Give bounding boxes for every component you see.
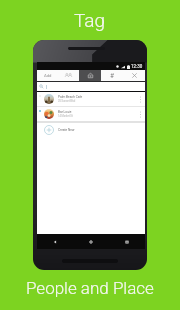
staticText: Palm Beach Cafe xyxy=(58,95,83,99)
other: More options xyxy=(139,96,142,103)
staticText: Bar Louie xyxy=(58,110,72,114)
button[interactable]: Add xyxy=(37,70,58,81)
button[interactable]: Home xyxy=(73,234,109,249)
button[interactable]: Tag xyxy=(101,70,123,81)
staticText: Tag xyxy=(74,9,106,31)
staticText: People and Place xyxy=(26,278,154,298)
button[interactable]: Bar Louie xyxy=(37,107,145,121)
button[interactable]: Recents xyxy=(109,234,145,249)
staticText: Create New xyxy=(58,128,75,132)
staticText: 12:30 xyxy=(131,64,143,69)
staticText: 14 Market St xyxy=(58,115,73,118)
staticText: Add xyxy=(44,73,52,78)
button[interactable]: Back xyxy=(37,234,73,249)
other: More options xyxy=(139,111,142,118)
button[interactable]: Place xyxy=(79,70,101,81)
button[interactable]: People xyxy=(58,70,79,81)
button[interactable]: Create New xyxy=(37,123,145,137)
button[interactable]: Close xyxy=(123,70,145,81)
button[interactable]: Palm Beach Cafe xyxy=(37,92,145,106)
button[interactable] xyxy=(37,81,145,92)
staticText: 25 Sunset Blvd xyxy=(58,100,76,103)
staticText: # xyxy=(110,72,115,80)
